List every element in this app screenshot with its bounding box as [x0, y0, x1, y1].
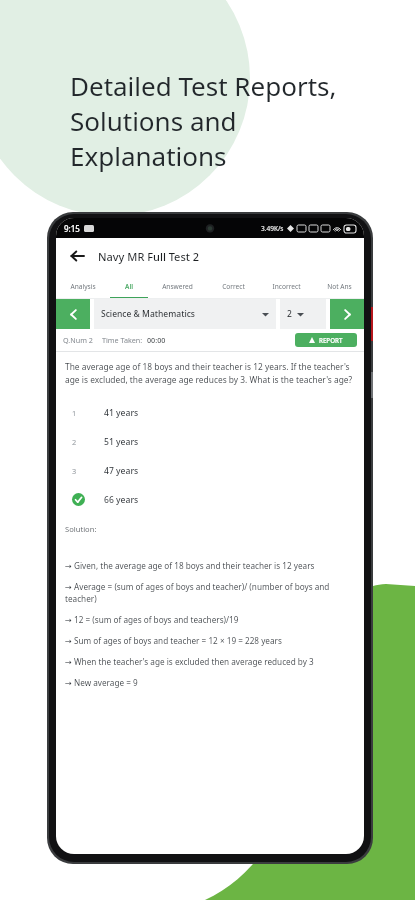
button[interactable]: Previous question: [56, 299, 90, 329]
staticText: Solution:: [65, 524, 97, 534]
button[interactable]: Incorrect: [259, 274, 314, 299]
staticText: Solutions and: [70, 103, 237, 138]
staticText: Analysis: [70, 282, 96, 291]
staticText: → 12 = (sum of ages of boys and teachers…: [65, 614, 239, 625]
staticText: Navy MR Full Test 2: [98, 249, 200, 264]
button[interactable]: All: [110, 274, 148, 299]
staticText: 3.49K/s: [261, 224, 284, 233]
staticText: Incorrect: [272, 282, 301, 291]
staticText: → Average = (sum of ages of boys and tea…: [65, 581, 355, 604]
button[interactable]: 1: [72, 398, 355, 427]
button[interactable]: Back: [66, 245, 88, 267]
button[interactable]: Answered: [148, 274, 207, 299]
staticText: Explanations: [70, 138, 227, 173]
staticText: The average age of 18 boys and their tea…: [65, 361, 355, 385]
staticText: REPORT: [319, 336, 343, 344]
staticText: 9:15: [64, 223, 80, 234]
staticText: 3: [72, 466, 77, 476]
staticText: → Sum of ages of boys and teacher = 12 ×…: [65, 635, 282, 646]
button[interactable]: 66 years: [72, 485, 355, 514]
staticText: 2: [287, 308, 292, 320]
button[interactable]: Next question: [330, 299, 364, 329]
button[interactable]: 2: [72, 427, 355, 456]
staticText: 51 years: [104, 436, 139, 448]
button[interactable]: Science & Mathematics: [101, 299, 269, 329]
staticText: 41 years: [104, 407, 139, 419]
staticText: Time Taken:: [102, 335, 143, 345]
staticText: Q.Num 2: [63, 335, 93, 345]
staticText: → New average = 9: [65, 677, 138, 688]
staticText: 66 years: [104, 494, 139, 506]
staticText: → When the teacher's age is excluded the…: [65, 656, 314, 667]
staticText: Answered: [162, 282, 193, 291]
button[interactable]: REPORT: [309, 336, 343, 344]
staticText: Not Ans: [327, 282, 352, 291]
button[interactable]: Analysis: [56, 274, 110, 299]
button[interactable]: Not Ans: [314, 274, 364, 299]
staticText: 1: [72, 408, 77, 418]
staticText: → Given, the average age of 18 boys and …: [65, 560, 315, 571]
staticText: Science & Mathematics: [101, 308, 195, 320]
button[interactable]: Correct: [207, 274, 259, 299]
staticText: Detailed Test Reports,: [70, 68, 337, 103]
button[interactable]: 3: [72, 456, 355, 485]
staticText: All: [125, 282, 133, 291]
staticText: Correct: [222, 282, 245, 291]
staticText: 2: [72, 437, 77, 447]
staticText: 00:00: [147, 335, 166, 345]
button[interactable]: 2: [287, 299, 319, 329]
staticText: 47 years: [104, 465, 139, 477]
